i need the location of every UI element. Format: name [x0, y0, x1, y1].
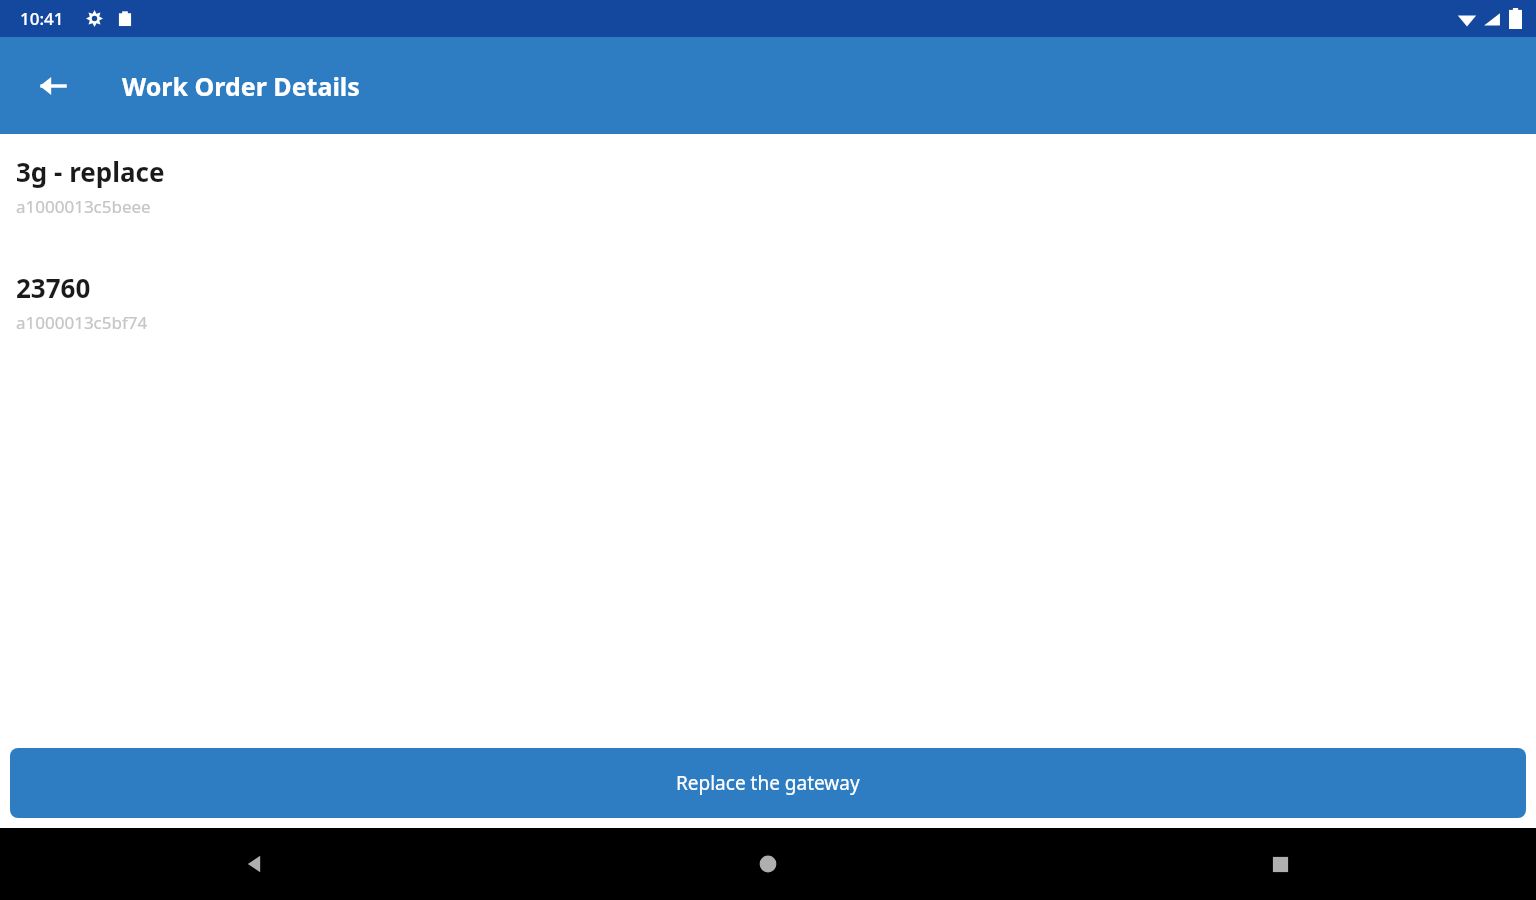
button[interactable]: Replace the gateway — [10, 748, 1526, 818]
button[interactable]: 23760 — [0, 268, 1536, 336]
staticText: 23760 — [16, 270, 91, 305]
button[interactable]: Home — [512, 828, 1024, 900]
button[interactable]: Recent apps — [1024, 828, 1536, 900]
button[interactable]: Back — [28, 61, 78, 111]
staticText: 3g - replace — [16, 154, 165, 189]
staticText: 10:41 — [20, 7, 64, 30]
button[interactable]: Back — [0, 828, 512, 900]
staticText: Replace the gateway — [676, 770, 860, 796]
staticText: a1000013c5bf74 — [16, 311, 148, 334]
button[interactable]: 3g - replace — [0, 152, 1536, 220]
staticText: a1000013c5beee — [16, 195, 151, 218]
staticText: Work Order Details — [122, 69, 360, 103]
